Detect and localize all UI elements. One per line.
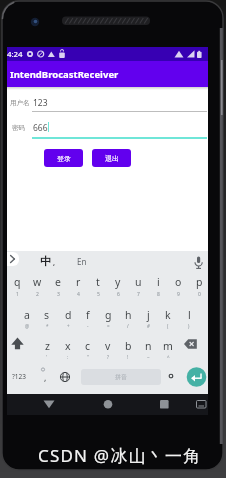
staticText: x: [65, 339, 71, 353]
button[interactable]: k: [158, 304, 178, 326]
staticText: d: [65, 308, 72, 322]
button[interactable]: n: [138, 335, 158, 357]
button[interactable]: m: [158, 335, 178, 357]
staticText: l: [188, 308, 191, 322]
staticText: ,: [53, 258, 55, 268]
button[interactable]: i: [148, 271, 168, 293]
staticText: *: [46, 323, 49, 329]
staticText: 666: [33, 122, 48, 134]
staticText: s: [44, 308, 50, 322]
staticText: v: [105, 339, 111, 353]
staticText: i: [157, 275, 160, 289]
staticText: 1: [16, 291, 19, 298]
staticText: ?: [107, 354, 109, 360]
staticText: ): [188, 323, 190, 329]
button[interactable]: q: [7, 271, 27, 293]
staticText: En: [77, 256, 87, 267]
staticText: 2: [36, 291, 39, 298]
staticText: 3: [57, 291, 60, 298]
staticText: g: [105, 308, 112, 322]
staticText: 4:24: [7, 49, 23, 60]
button[interactable]: f: [78, 304, 98, 326]
button[interactable]: h: [118, 304, 138, 326]
button[interactable]: v: [98, 335, 118, 357]
button[interactable]: ?123: [7, 368, 31, 384]
button[interactable]: c: [78, 335, 98, 357]
staticText: p: [196, 275, 203, 289]
staticText: y: [115, 275, 121, 289]
button[interactable]: En: [72, 252, 92, 270]
staticText: q: [14, 275, 21, 289]
button[interactable]: [179, 334, 201, 356]
button[interactable]: 登录: [44, 149, 83, 167]
button[interactable]: g: [98, 304, 118, 326]
button[interactable]: [38, 394, 60, 415]
staticText: 6: [117, 291, 120, 298]
button[interactable]: ,: [40, 370, 50, 384]
button[interactable]: [7, 252, 19, 266]
staticText: +: [67, 323, 70, 329]
staticText: =: [107, 323, 110, 329]
button[interactable]: 退出: [92, 149, 131, 167]
staticText: t: [96, 275, 100, 289]
button[interactable]: b: [118, 335, 138, 357]
staticText: #: [147, 323, 150, 329]
button[interactable]: o: [168, 271, 188, 293]
staticText: CSDN @冰山丶一角: [38, 444, 202, 466]
button[interactable]: t: [88, 271, 108, 293]
button[interactable]: [8, 334, 30, 356]
button[interactable]: 拼音: [81, 369, 161, 385]
button[interactable]: j: [138, 304, 158, 326]
staticText: 4: [77, 291, 80, 298]
staticText: c: [85, 339, 91, 353]
staticText: -: [87, 323, 89, 329]
button[interactable]: y: [108, 271, 128, 293]
staticText: ^: [167, 354, 170, 360]
staticText: ?123: [12, 372, 26, 381]
staticText: 9: [177, 291, 180, 298]
staticText: n: [145, 339, 152, 353]
button[interactable]: 中: [34, 252, 56, 270]
staticText: 0: [198, 291, 201, 298]
button[interactable]: [153, 394, 175, 415]
button[interactable]: p: [189, 271, 209, 293]
staticText: 密码: [12, 124, 25, 132]
staticText: w: [33, 275, 42, 289]
staticText: 123: [33, 97, 48, 109]
button[interactable]: [192, 394, 210, 415]
staticText: 5: [97, 291, 100, 298]
button[interactable]: [186, 367, 207, 388]
button[interactable]: s: [37, 304, 57, 326]
staticText: r: [76, 275, 81, 289]
staticText: a: [24, 308, 30, 322]
button[interactable]: [97, 394, 119, 415]
staticText: 中: [40, 254, 51, 268]
staticText: !: [127, 354, 129, 360]
staticText: f: [86, 308, 90, 322]
staticText: 拼音: [115, 373, 127, 381]
button[interactable]: x: [58, 335, 78, 357]
staticText: z: [45, 339, 50, 353]
staticText: ": [87, 354, 89, 360]
staticText: (: [167, 323, 169, 329]
button[interactable]: l: [179, 304, 199, 326]
staticText: u: [135, 275, 142, 289]
button[interactable]: e: [48, 271, 68, 293]
button[interactable]: z: [37, 335, 57, 357]
staticText: k: [165, 308, 171, 322]
staticText: b: [125, 339, 132, 353]
button[interactable]: d: [58, 304, 78, 326]
button[interactable]: u: [128, 271, 148, 293]
staticText: 登录: [57, 154, 71, 163]
staticText: 8: [157, 291, 160, 298]
staticText: ': [46, 354, 48, 360]
staticText: 用户名: [10, 99, 30, 107]
button[interactable]: r: [68, 271, 88, 293]
button[interactable]: a: [17, 304, 37, 326]
button[interactable]: w: [27, 271, 47, 293]
staticText: ~: [147, 354, 150, 360]
staticText: ,: [44, 371, 47, 383]
staticText: h: [125, 308, 132, 322]
